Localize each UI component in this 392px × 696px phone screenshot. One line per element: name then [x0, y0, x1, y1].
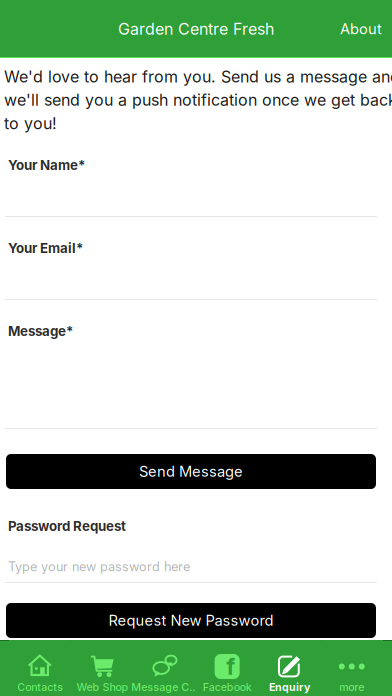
button[interactable]: Send Message — [6, 454, 376, 489]
staticText: Message C... — [131, 680, 198, 693]
staticText: Password Request — [8, 518, 126, 534]
button[interactable]: more — [321, 640, 383, 696]
staticText: Enquiry — [269, 680, 310, 693]
staticText: Web Shop — [76, 680, 128, 693]
button[interactable]: Web Shop — [71, 640, 134, 696]
staticText: Type your new password here — [8, 559, 190, 574]
staticText: Request New Password — [108, 612, 273, 629]
staticText: We'd love to hear from you. Send us a me… — [4, 67, 392, 133]
staticText: Message* — [8, 323, 73, 339]
staticText: Send Message — [139, 463, 243, 480]
staticText: About — [340, 20, 382, 38]
button[interactable]: About — [330, 10, 392, 48]
staticText: f — [226, 653, 235, 680]
staticText: Your Email* — [8, 240, 83, 256]
button[interactable]: Request New Password — [6, 603, 376, 638]
button[interactable]: Enquiry — [258, 640, 321, 696]
button[interactable]: Contacts — [9, 640, 71, 696]
button[interactable]: f — [196, 640, 258, 696]
staticText: Your Name* — [8, 157, 85, 173]
staticText: Contacts — [17, 680, 63, 693]
staticText: Garden Centre Fresh — [118, 19, 274, 39]
staticText: more — [339, 680, 364, 693]
staticText: Facebook — [203, 680, 252, 693]
button[interactable]: Message C... — [134, 640, 196, 696]
